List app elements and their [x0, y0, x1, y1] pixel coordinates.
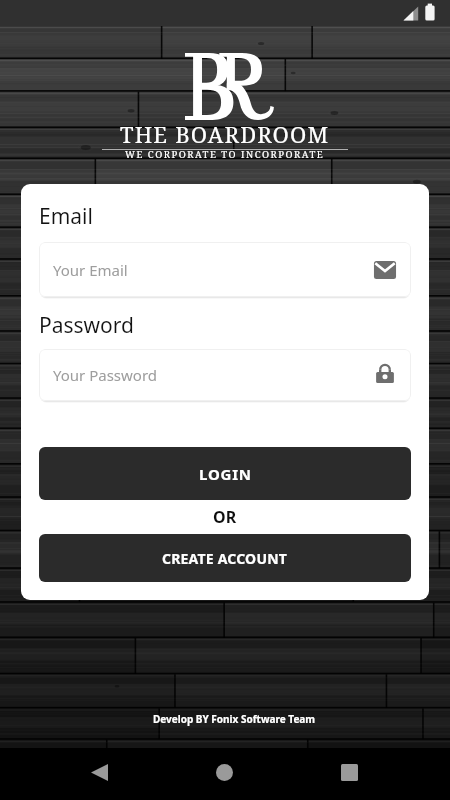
staticText: THE BOARDROOM [120, 119, 330, 149]
button[interactable]: Back [75, 748, 124, 797]
staticText: WE CORPORATE TO INCORPORATE [125, 148, 325, 161]
other: Password [373, 363, 397, 387]
other: Email [373, 258, 397, 282]
staticText: Email [39, 202, 93, 231]
button[interactable]: Your Email [39, 242, 411, 297]
staticText: Your Password [53, 365, 373, 385]
staticText: Your Email [53, 260, 373, 280]
button[interactable]: Your Password [39, 349, 411, 401]
staticText: CREATE ACCOUNT [162, 549, 288, 568]
button[interactable]: Home [200, 748, 249, 797]
button[interactable]: Recent apps [325, 748, 374, 797]
staticText: OR [213, 506, 237, 528]
button[interactable]: CREATE ACCOUNT [39, 534, 411, 582]
staticText: LOGIN [199, 464, 252, 484]
button[interactable]: LOGIN [39, 447, 411, 500]
staticText: Password [39, 311, 134, 340]
staticText: Develop BY Fonix Software Team [9, 712, 450, 726]
